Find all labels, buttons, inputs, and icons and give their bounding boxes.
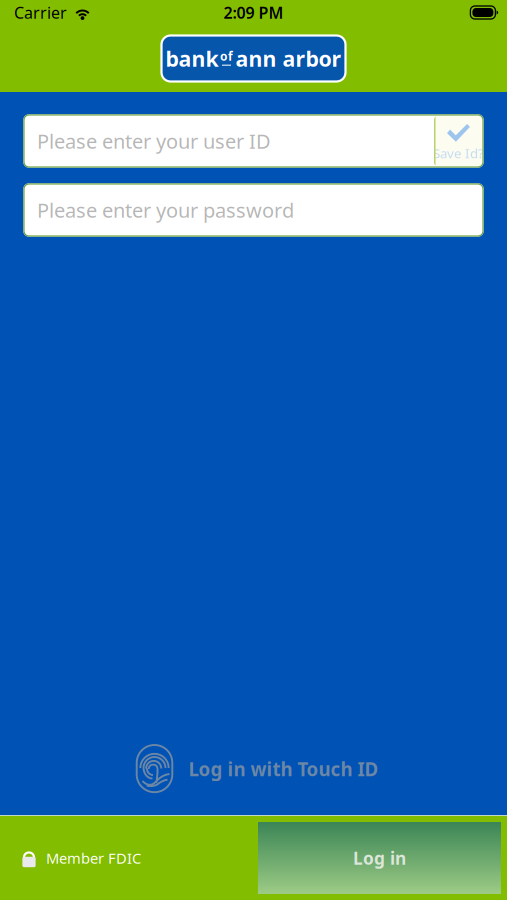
staticText: Member FDIC <box>46 848 141 868</box>
button[interactable]: Log in <box>258 822 501 894</box>
button[interactable]: bank of ann arbor <box>161 35 345 81</box>
staticText: Log in with Touch ID <box>188 757 378 781</box>
staticText: Please enter your password <box>37 197 294 223</box>
staticText: of <box>220 48 233 64</box>
button[interactable]: Please enter your user ID <box>24 115 434 167</box>
staticText: Log in <box>353 846 406 869</box>
staticText: 2:09 PM <box>223 2 283 23</box>
staticText: Save Id? <box>433 144 484 162</box>
staticText: Please enter your user ID <box>37 128 271 154</box>
staticText: Carrier <box>14 2 67 23</box>
button[interactable]: Please enter your password <box>24 184 483 236</box>
button[interactable]: Log in with Touch ID <box>134 745 373 793</box>
staticText: bank <box>165 44 218 73</box>
button[interactable]: Save Id <box>434 115 483 167</box>
staticText: ann arbor <box>235 44 341 73</box>
